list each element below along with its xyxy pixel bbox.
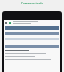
button[interactable]: Menu — [5, 21, 59, 24]
staticText: Compose tools — [0, 2, 64, 4]
